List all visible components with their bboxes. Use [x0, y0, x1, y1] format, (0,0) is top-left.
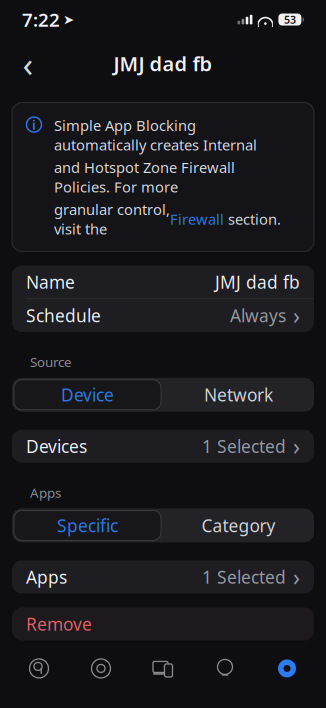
- button[interactable]: Remove: [12, 607, 314, 640]
- button[interactable]: Security: [8, 657, 70, 679]
- staticText: Network: [204, 383, 273, 406]
- button[interactable]: Specific: [12, 508, 163, 542]
- staticText: 7:22: [22, 7, 60, 32]
- button[interactable]: Category: [163, 508, 314, 542]
- staticText: Apps: [30, 484, 61, 501]
- staticText: Simple App Blocking automatically create…: [54, 116, 257, 155]
- staticText: Category: [201, 514, 275, 537]
- button[interactable]: Monitor: [70, 657, 132, 679]
- button[interactable]: Firewall: [170, 209, 224, 229]
- staticText: Apps: [26, 565, 67, 588]
- staticText: Always: [230, 304, 286, 327]
- staticText: ›: [293, 562, 300, 592]
- staticText: Firewall: [170, 209, 224, 229]
- button[interactable]: Apps: [12, 560, 314, 593]
- staticText: Name: [26, 270, 75, 293]
- staticText: i: [32, 116, 36, 133]
- staticText: 1 Selected: [202, 435, 286, 458]
- staticText: ›: [293, 300, 300, 331]
- button[interactable]: Network: [163, 378, 314, 412]
- staticText: section.: [224, 209, 281, 229]
- button[interactable]: Devices: [12, 430, 314, 463]
- staticText: ›: [293, 431, 300, 461]
- staticText: Specific: [57, 514, 118, 537]
- staticText: JMJ dad fb: [113, 50, 212, 77]
- button[interactable]: Device: [12, 378, 163, 412]
- staticText: 1 Selected: [202, 565, 286, 588]
- staticText: Source: [30, 353, 72, 371]
- staticText: Device: [61, 383, 114, 406]
- staticText: 53: [284, 12, 296, 27]
- button[interactable]: Schedule: [12, 299, 314, 332]
- button[interactable]: Insights: [194, 657, 256, 679]
- staticText: granular control, visit the: [54, 199, 170, 238]
- staticText: ➤: [63, 12, 74, 27]
- staticText: Schedule: [26, 304, 101, 327]
- button[interactable]: Devices: [132, 657, 194, 679]
- staticText: ‹: [22, 40, 33, 86]
- staticText: JMJ dad fb: [215, 270, 300, 293]
- staticText: Remove: [26, 612, 92, 635]
- staticText: Devices: [26, 435, 87, 458]
- button[interactable]: Settings: [256, 657, 318, 679]
- staticText: and Hotspot Zone Firewall Policies. For …: [54, 157, 235, 196]
- button[interactable]: Back: [8, 44, 48, 84]
